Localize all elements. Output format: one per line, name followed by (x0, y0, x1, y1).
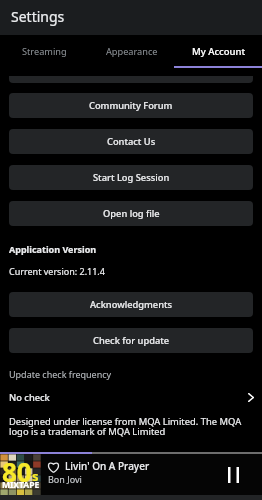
staticText: Settings (11, 7, 65, 26)
button[interactable]: Acknowledgments (9, 292, 253, 317)
staticText: Application Version (9, 243, 97, 255)
staticText: s (32, 467, 39, 485)
staticText: Appearance (106, 45, 158, 58)
button[interactable]: Open log file (9, 201, 253, 226)
button[interactable]: Favourite (45, 459, 61, 475)
staticText: Contact Us (107, 135, 156, 148)
staticText: Streaming (22, 45, 67, 58)
staticText: Current version: 2.11.4 (9, 265, 105, 277)
staticText: MIXTAPE (2, 479, 40, 491)
button[interactable]: My Account (175, 35, 262, 68)
staticText: Designed under license from MQA Limited.… (9, 415, 249, 437)
staticText: No check (9, 391, 50, 404)
staticText: 80 (2, 454, 32, 489)
staticText: Community Forum (89, 99, 173, 112)
button[interactable]: No check (0, 387, 262, 408)
staticText: Check for update (93, 334, 170, 347)
button[interactable]: Start Log Session (9, 165, 253, 190)
staticText: Update check frequency (9, 368, 112, 380)
button[interactable]: Streaming (0, 35, 88, 68)
button[interactable]: Check for update (9, 328, 253, 353)
button[interactable]: Community Forum (9, 93, 253, 118)
staticText: Livin' On A Prayer (65, 459, 150, 473)
button[interactable]: Contact Us (9, 129, 253, 154)
staticText: Open log file (103, 207, 160, 220)
staticText: Acknowledgments (90, 298, 173, 311)
staticText: My Account (192, 45, 246, 58)
staticText: Start Log Session (93, 171, 170, 184)
button[interactable]: Appearance (88, 35, 175, 68)
button[interactable]: Pause (213, 455, 253, 495)
staticText: Bon Jovi (48, 473, 82, 485)
